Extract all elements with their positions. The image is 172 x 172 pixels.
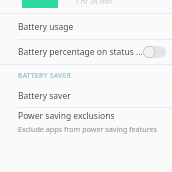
staticText: Power saving exclusions — [18, 110, 115, 122]
button[interactable]: Battery percentage on status bar toggle — [143, 46, 166, 58]
staticText: Battery saver — [18, 90, 71, 102]
staticText: Battery percentage on status bar — [18, 46, 143, 58]
staticText: Exclude apps from power saving features — [18, 124, 157, 134]
button[interactable]: Battery percentage on status bar — [0, 40, 172, 64]
button[interactable]: Battery usage — [0, 14, 172, 39]
button[interactable]: Battery level indicator — [22, 0, 58, 8]
staticText: BATTERY SAVER — [18, 71, 72, 80]
staticText: 1 hr 34 min — [75, 0, 113, 7]
staticText: Battery usage — [18, 21, 74, 33]
button[interactable]: Battery saver — [0, 85, 172, 107]
button[interactable]: Power saving exclusions — [0, 108, 172, 136]
